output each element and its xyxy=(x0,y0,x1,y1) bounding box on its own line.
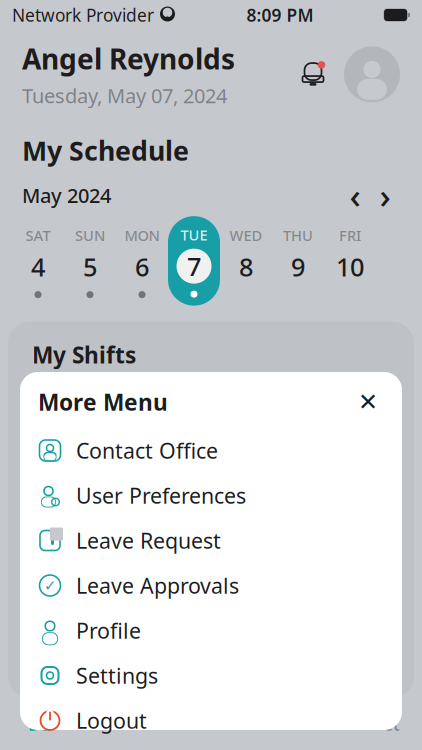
button[interactable]: WED xyxy=(220,218,272,304)
button[interactable]: User Preferences xyxy=(20,473,402,518)
staticText: › xyxy=(379,172,390,218)
button[interactable]: Profile xyxy=(344,46,400,102)
staticText: May 2024 xyxy=(22,182,111,208)
staticText: User Preferences xyxy=(76,481,246,510)
staticText: 6 xyxy=(135,250,149,283)
staticText: 5 xyxy=(83,250,97,283)
staticText: Network Provider xyxy=(12,3,154,26)
staticText: More Menu xyxy=(38,387,168,417)
staticText: My Schedule xyxy=(22,133,189,168)
staticText: Leave Approvals xyxy=(76,571,239,600)
staticText: WED xyxy=(229,226,262,245)
button[interactable]: Notifications xyxy=(296,57,330,91)
button[interactable]: et xyxy=(383,712,422,735)
button[interactable]: FRI xyxy=(324,218,376,304)
staticText: SUN xyxy=(75,226,105,245)
staticText: Leave Request xyxy=(76,526,221,555)
staticText: ‹ xyxy=(349,172,360,218)
button[interactable]: Da xyxy=(0,712,191,735)
button[interactable]: SUN xyxy=(64,218,116,304)
staticText: Settings xyxy=(76,661,158,690)
button[interactable]: TUE xyxy=(168,216,220,306)
button[interactable]: SAT xyxy=(12,218,64,304)
staticText: 7 xyxy=(187,249,201,283)
button[interactable]: Close xyxy=(352,386,384,418)
button[interactable]: Previous week xyxy=(340,180,370,210)
staticText: 9 xyxy=(291,250,305,283)
button[interactable]: MON xyxy=(116,218,168,304)
staticText: Contact Office xyxy=(76,436,218,465)
staticText: 8 xyxy=(239,250,253,283)
staticText: ✓ xyxy=(44,577,56,594)
staticText: Angel Reynolds xyxy=(22,40,235,77)
staticText: 4 xyxy=(31,250,45,283)
button[interactable]: Next week xyxy=(370,180,400,210)
staticText: Logout xyxy=(76,706,147,735)
button[interactable]: Contact Office xyxy=(20,428,402,473)
button[interactable]: Settings xyxy=(20,653,402,698)
button[interactable]: Bartender xyxy=(8,370,414,426)
button[interactable]: Profile xyxy=(20,608,402,653)
staticText: Profile xyxy=(76,616,141,645)
staticText: MON xyxy=(124,226,159,245)
staticText: Da xyxy=(28,712,51,735)
button[interactable]: Logout xyxy=(20,698,402,743)
staticText: 8:09 PM xyxy=(246,3,313,26)
staticText: ✕ xyxy=(358,388,378,416)
button[interactable]: THU xyxy=(272,218,324,304)
staticText: Tuesday, May 07, 2024 xyxy=(22,82,227,109)
staticText: TUE xyxy=(180,225,207,245)
staticText: My Shifts xyxy=(32,340,136,370)
staticText: FRI xyxy=(339,226,361,245)
staticText: 10 xyxy=(336,250,364,283)
staticText: Bartender xyxy=(50,390,151,417)
staticText: et xyxy=(383,712,400,735)
staticText: SAT xyxy=(25,226,50,245)
button[interactable]: Leave Request xyxy=(20,518,402,563)
staticText: THU xyxy=(283,226,313,245)
button[interactable]: ✓ xyxy=(20,563,402,608)
